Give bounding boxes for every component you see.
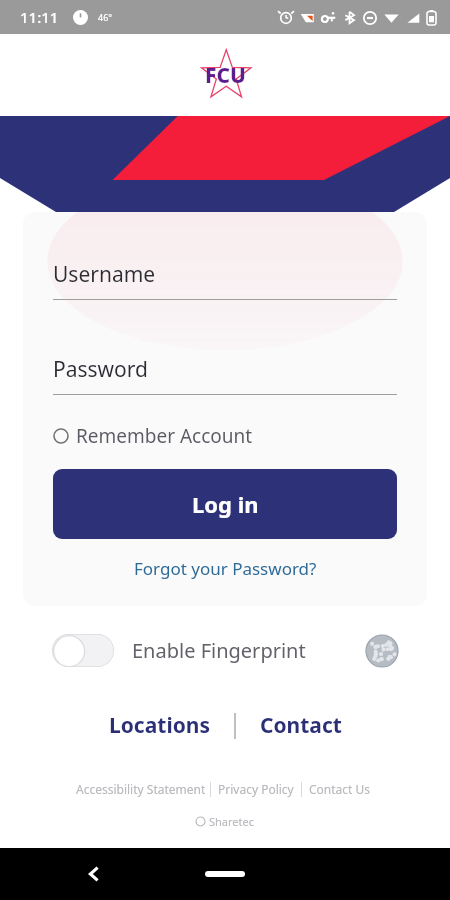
staticText: Password <box>53 355 148 384</box>
button[interactable]: Back <box>84 864 104 884</box>
staticText: Contact Us <box>309 781 371 797</box>
button[interactable]: Privacy Policy <box>211 778 301 800</box>
button[interactable]: Locations <box>103 707 216 744</box>
staticText: 46° <box>98 11 113 23</box>
staticText: Accessibility Statement <box>76 781 206 797</box>
staticText: Contact <box>260 711 342 740</box>
button[interactable]: Forgot your Password? <box>53 557 397 580</box>
button[interactable]: Username <box>53 260 397 300</box>
button[interactable]: Log in <box>53 469 397 539</box>
staticText: Log in <box>192 489 259 519</box>
button[interactable]: Contact <box>254 707 348 744</box>
staticText: Enable Fingerprint <box>132 637 306 664</box>
staticText: FCU <box>205 61 246 90</box>
staticText: Username <box>53 260 156 289</box>
button[interactable]: Remember Account <box>53 423 397 449</box>
staticText: Forgot your Password? <box>134 557 317 580</box>
staticText: Remember Account <box>76 423 253 449</box>
staticText: 11:11 <box>20 7 59 27</box>
button[interactable]: Password <box>53 355 397 395</box>
staticText: Sharetec <box>209 814 254 829</box>
button[interactable]: Enable Fingerprint toggle <box>52 634 114 667</box>
button[interactable]: Fingerprint <box>366 635 398 667</box>
staticText: Locations <box>109 711 210 740</box>
button[interactable]: Contact Us <box>302 778 378 800</box>
button[interactable]: Accessibility Statement <box>72 778 210 800</box>
staticText: Privacy Policy <box>218 781 294 797</box>
button[interactable]: Home <box>205 871 245 877</box>
